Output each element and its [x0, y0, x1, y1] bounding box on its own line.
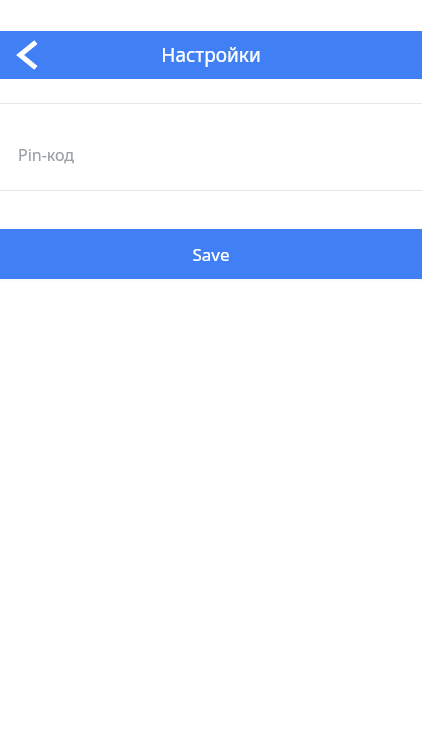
staticText: Настройки	[161, 42, 261, 68]
button[interactable]: Back	[6, 33, 50, 77]
staticText: Pin-код	[18, 144, 75, 166]
button[interactable]: Pin-код	[0, 104, 422, 190]
staticText: Save	[192, 243, 230, 266]
button[interactable]: Save	[0, 229, 422, 279]
